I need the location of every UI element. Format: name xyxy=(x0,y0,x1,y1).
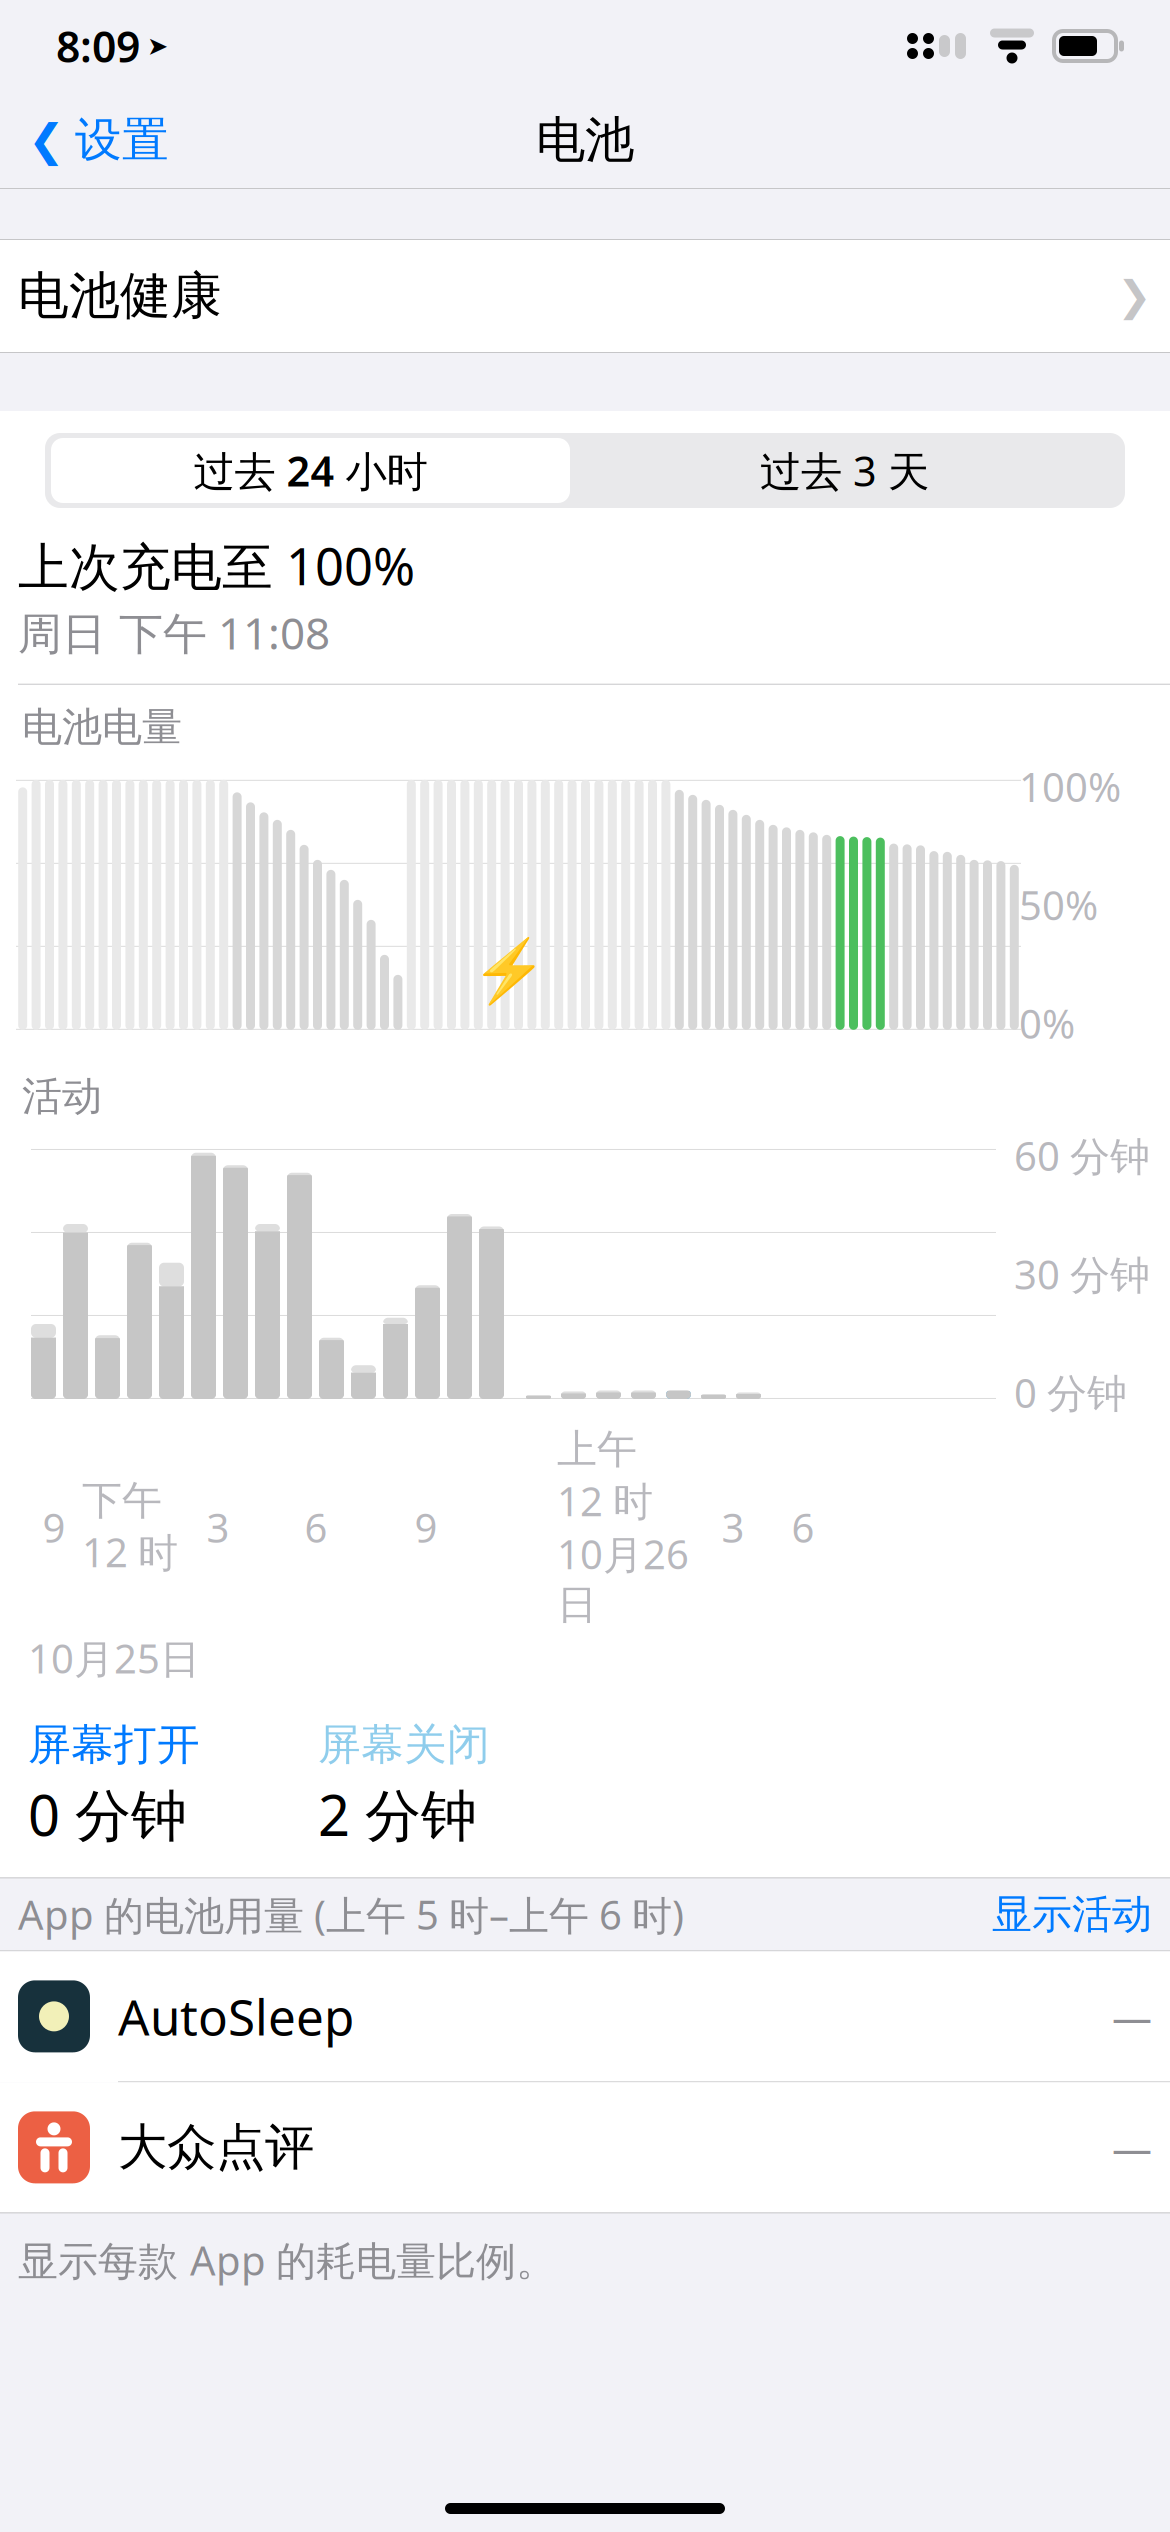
staticText: 0% xyxy=(1019,997,1075,1050)
staticText: 过去 24 小时 xyxy=(193,443,427,498)
staticText: 50% xyxy=(1019,878,1098,931)
staticText: 0 分钟 xyxy=(1014,1366,1127,1419)
staticText: 8:09 xyxy=(56,18,140,74)
staticText: 过去 3 天 xyxy=(760,443,929,498)
staticText: 9 xyxy=(414,1501,437,1554)
staticText: 30 分钟 xyxy=(1014,1247,1150,1300)
button[interactable]: 过去 3 天 xyxy=(570,438,1119,503)
staticText: 2 分钟 xyxy=(318,1777,477,1851)
staticText: 3 xyxy=(206,1501,229,1554)
staticText: AutoSleep xyxy=(118,1984,354,2049)
staticText: 活动 xyxy=(22,1072,102,1121)
staticText: 0 分钟 xyxy=(28,1777,187,1851)
staticText: ❮ xyxy=(28,115,65,165)
staticText: 上次充电至 100% xyxy=(18,532,415,599)
staticText: 电池 xyxy=(536,110,634,170)
button[interactable]: 屏幕关闭 xyxy=(318,1719,608,1851)
staticText: 显示每款 App 的耗电量比例。 xyxy=(18,2233,556,2286)
staticText: App 的电池用量 (上午 5 时–上午 6 时) xyxy=(18,1888,684,1941)
staticText: 100% xyxy=(1019,760,1121,813)
staticText: ➤ xyxy=(147,32,168,60)
staticText: — xyxy=(1112,1990,1152,2043)
staticText: 周日 下午 11:08 xyxy=(18,603,330,662)
button[interactable]: 过去 24 小时 xyxy=(51,438,570,503)
staticText: — xyxy=(1112,2121,1152,2174)
staticText: 60 分钟 xyxy=(1014,1129,1150,1182)
button[interactable]: 大众点评 xyxy=(0,2082,1170,2212)
staticText: 3 xyxy=(721,1501,744,1554)
staticText: 9 xyxy=(42,1501,65,1554)
staticText: 电池健康 xyxy=(18,265,222,327)
button[interactable]: 显示活动 xyxy=(992,1890,1152,1939)
staticText: 下午 12 时 xyxy=(82,1476,178,1578)
staticText: 6 xyxy=(791,1501,814,1554)
staticText: ❯ xyxy=(1117,272,1152,319)
staticText: 设置 xyxy=(75,111,169,169)
staticText: 显示活动 xyxy=(992,1890,1152,1939)
button[interactable]: 电池健康 xyxy=(0,240,1170,352)
staticText: 屏幕关闭 xyxy=(318,1719,490,1771)
staticText: 电池电量 xyxy=(22,703,182,752)
button[interactable]: AutoSleep xyxy=(0,1951,1170,2082)
staticText: 10月25日 xyxy=(28,1631,200,1685)
staticText: ⚡ xyxy=(471,936,547,1006)
staticText: 6 xyxy=(304,1501,327,1554)
button[interactable]: 屏幕打开 xyxy=(28,1719,318,1851)
staticText: 屏幕打开 xyxy=(28,1719,200,1771)
button[interactable]: ❮ xyxy=(0,97,169,183)
staticText: 上午 12 时 10月26日 xyxy=(557,1425,689,1629)
staticText: 大众点评 xyxy=(118,2117,314,2178)
